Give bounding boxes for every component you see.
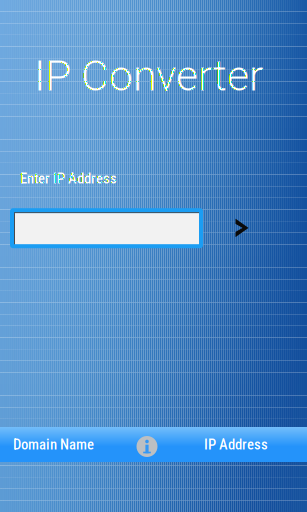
staticText: Enter IP Address [20,170,117,187]
button[interactable]: Domain Name [0,427,124,462]
button[interactable]: Info [124,427,170,462]
staticText: IP Converter [34,51,263,101]
button[interactable]: IP Address [170,427,307,462]
staticText: IP Address [204,436,268,453]
button[interactable]: Convert [220,207,264,249]
staticText: Domain Name [13,436,94,453]
